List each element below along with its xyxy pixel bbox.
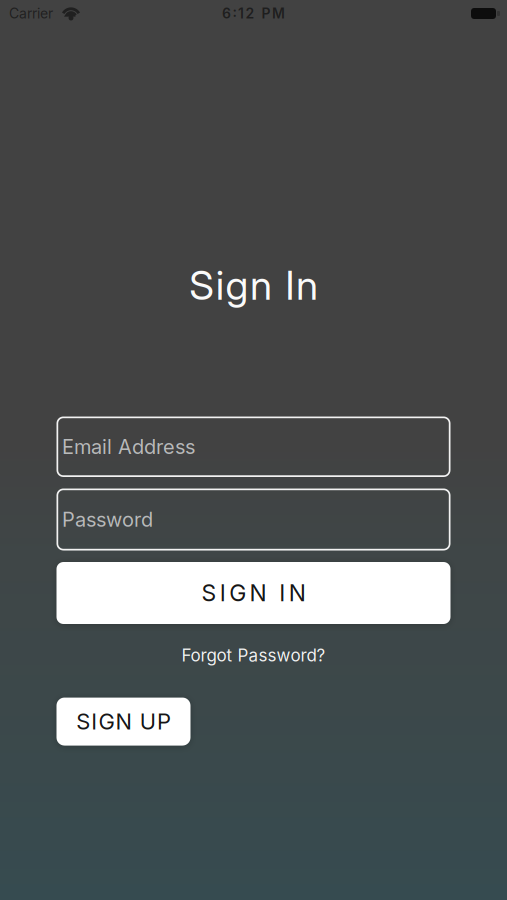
button[interactable]: SIGN IN xyxy=(56,562,450,624)
button[interactable]: Email Address xyxy=(56,416,450,477)
staticText: Sign In xyxy=(189,261,318,309)
staticText: Carrier xyxy=(9,5,53,22)
staticText: SIGN UP xyxy=(76,708,171,735)
staticText: SIGN IN xyxy=(201,579,306,607)
staticText: Email Address xyxy=(62,435,195,459)
button[interactable]: Forgot Password? xyxy=(181,645,325,666)
button[interactable]: Password xyxy=(56,488,450,550)
staticText: Password xyxy=(62,507,153,532)
staticText: Forgot Password? xyxy=(181,645,325,666)
staticText: 6:12 PM xyxy=(222,5,285,22)
button[interactable]: SIGN UP xyxy=(56,698,190,746)
